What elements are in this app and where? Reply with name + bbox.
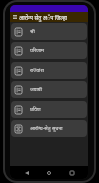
button[interactable]: परिणाम (11, 42, 87, 59)
button[interactable]: श्री (11, 23, 87, 40)
button[interactable]: Recents (66, 166, 78, 179)
button[interactable]: Menu (10, 12, 19, 22)
staticText: परिणाम (30, 47, 45, 54)
button[interactable]: आरोग्य-सेतु सूचना (11, 120, 87, 137)
staticText: प्रविण (30, 106, 41, 113)
staticText: आरोग्य सेतु अॅप जिल्हा (19, 14, 67, 21)
button[interactable]: प्रविण (11, 101, 87, 118)
staticText: राज्यांश (30, 67, 44, 74)
staticText: आरोग्य-सेतु सूचना (30, 125, 63, 132)
staticText: जवाबी (30, 86, 42, 93)
button[interactable]: राज्यांश (11, 62, 87, 79)
button[interactable]: Home (43, 166, 55, 179)
button[interactable]: जवाबी (11, 81, 87, 98)
button[interactable]: Back (21, 166, 33, 179)
staticText: श्री (30, 28, 35, 35)
